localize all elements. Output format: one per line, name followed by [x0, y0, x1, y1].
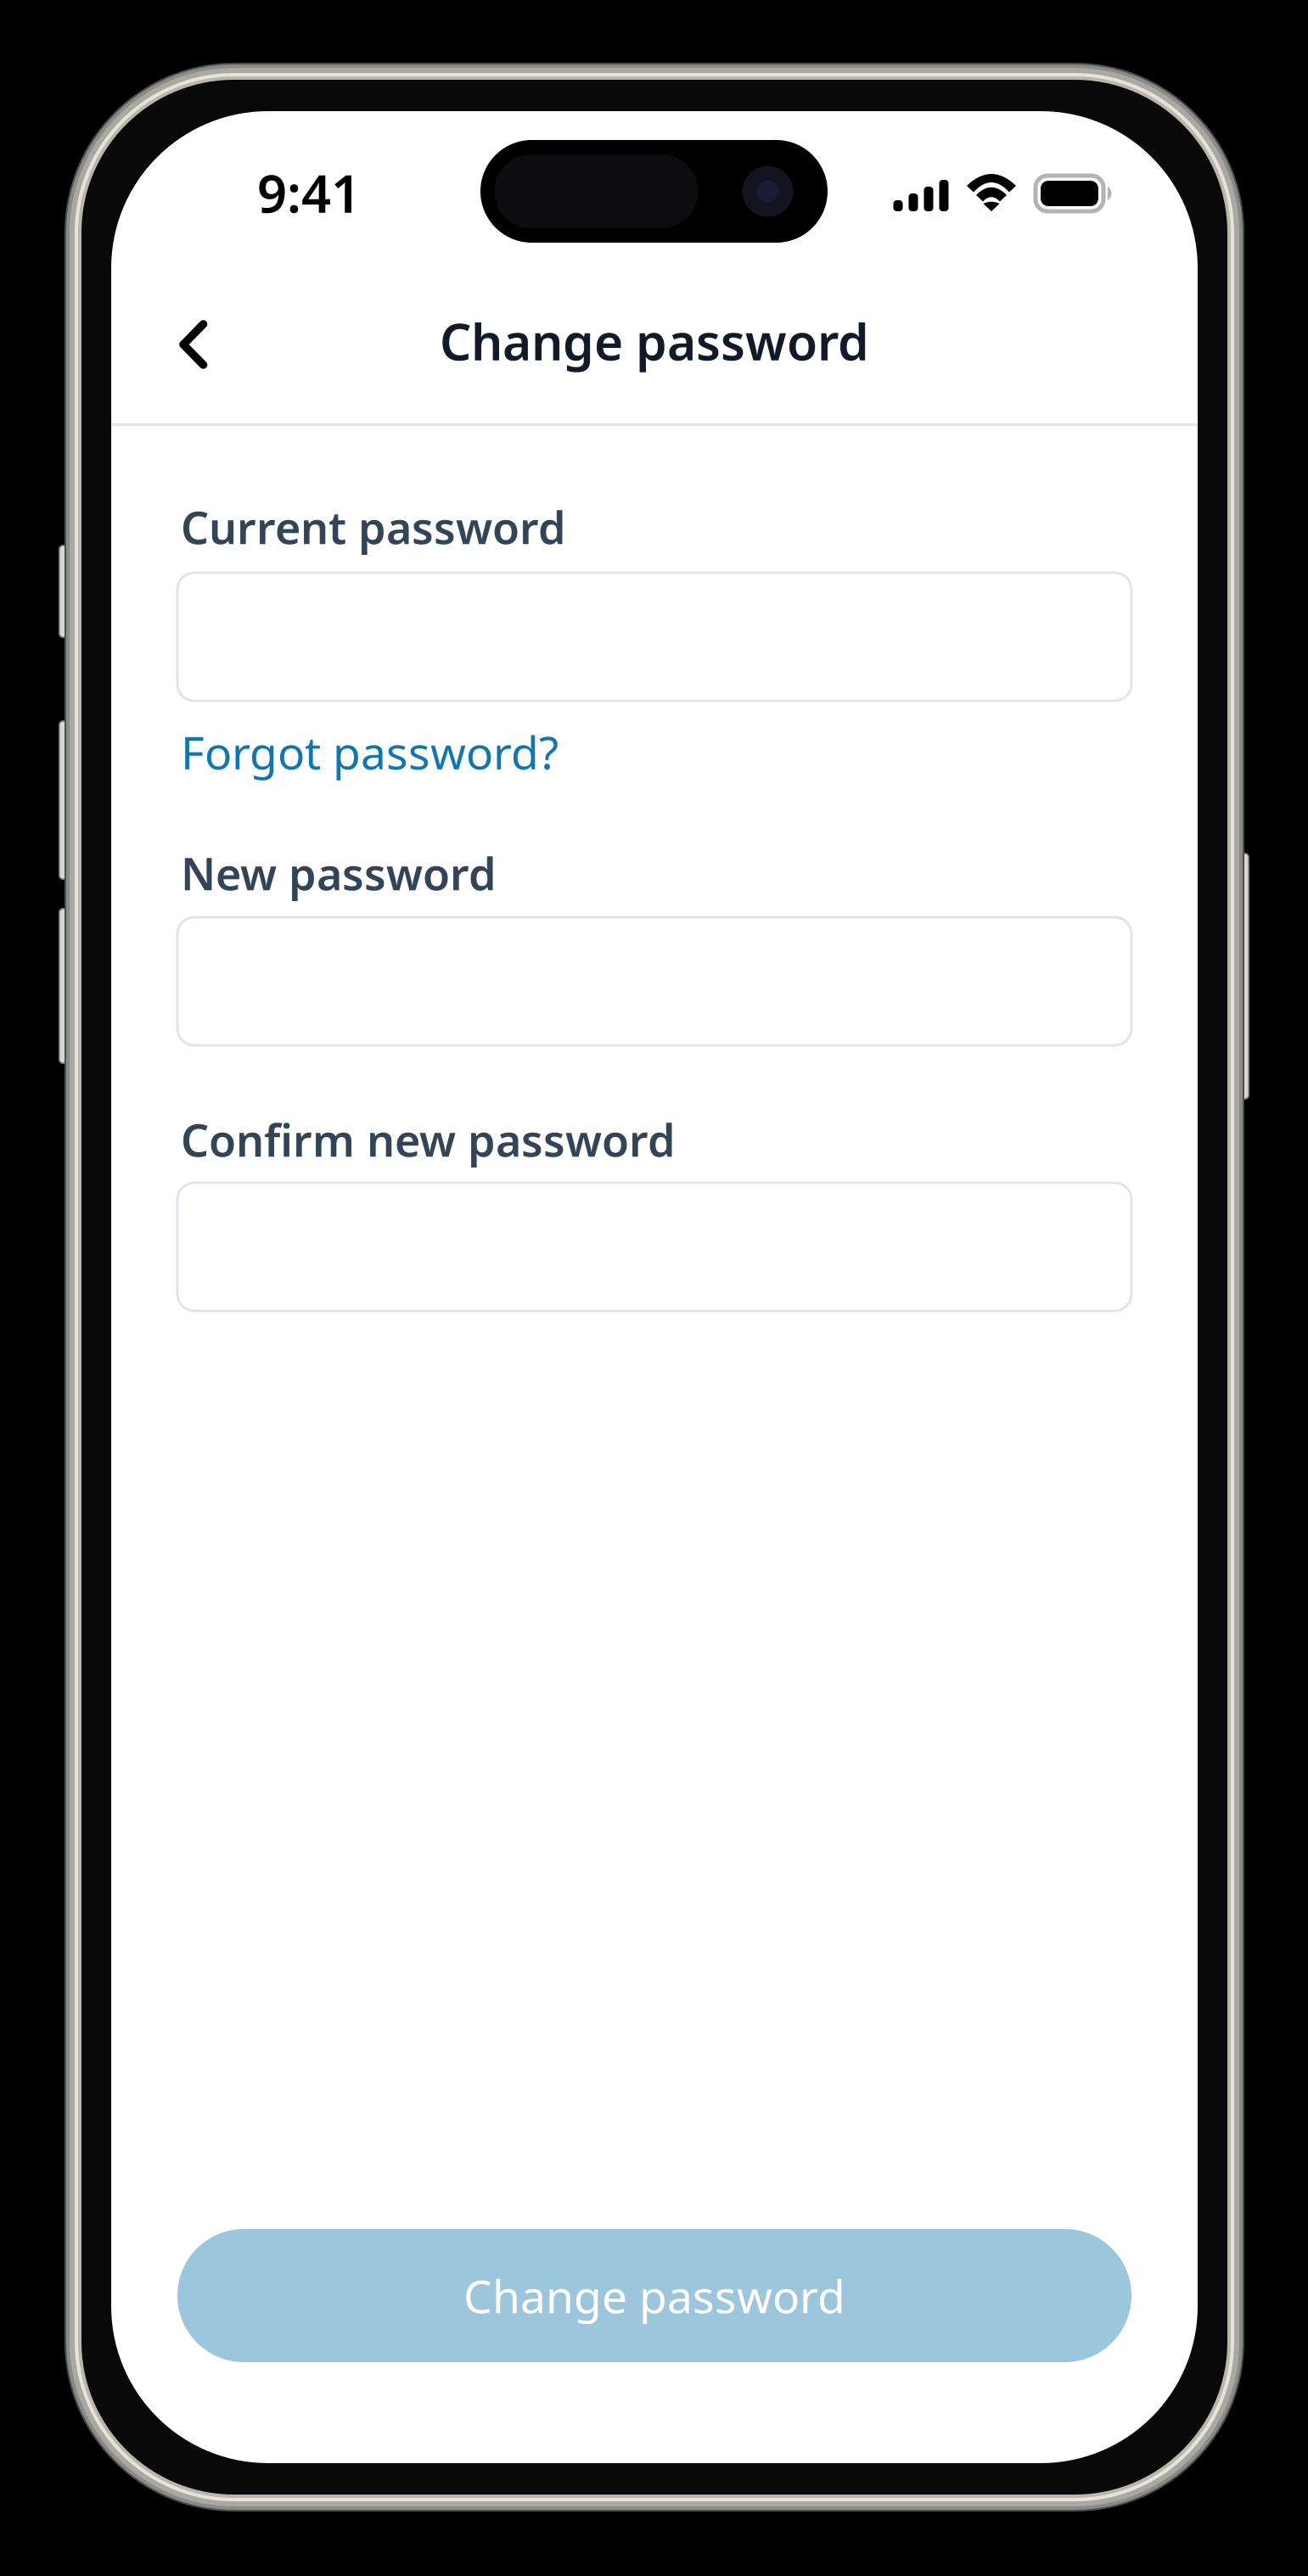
- button[interactable]: Forgot password?: [181, 727, 559, 776]
- staticText: New password: [181, 844, 497, 902]
- staticText: Change password: [440, 308, 869, 374]
- staticText: Change password: [463, 2266, 845, 2326]
- staticText: Forgot password?: [181, 722, 559, 782]
- button[interactable]: Back: [143, 294, 244, 395]
- button[interactable]: Change password: [177, 2229, 1131, 2362]
- staticText: Current password: [181, 498, 566, 556]
- staticText: 9:41: [257, 158, 361, 227]
- staticText: Confirm new password: [181, 1110, 676, 1169]
